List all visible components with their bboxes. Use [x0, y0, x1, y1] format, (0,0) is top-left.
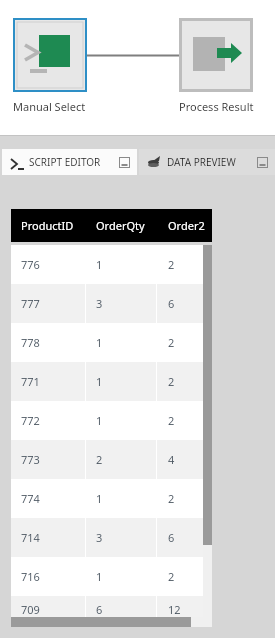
- staticText: SCRIPT EDITOR: [29, 155, 101, 169]
- button[interactable]: DATA PREVIEW: [139, 149, 275, 175]
- staticText: 2: [168, 257, 175, 272]
- staticText: DATA PREVIEW: [167, 155, 236, 169]
- button[interactable]: 777: [11, 284, 212, 323]
- staticText: 2: [168, 413, 175, 428]
- button[interactable]: 778: [11, 323, 212, 362]
- staticText: Order2: [168, 218, 205, 233]
- button[interactable]: 774: [11, 479, 212, 518]
- staticText: 6: [168, 530, 175, 545]
- staticText: 1: [96, 374, 103, 389]
- staticText: 3: [96, 296, 103, 311]
- staticText: 2: [168, 569, 175, 584]
- staticText: 1: [96, 569, 103, 584]
- staticText: OrderQty: [96, 218, 145, 233]
- button[interactable]: 771: [11, 362, 212, 401]
- staticText: 3: [96, 530, 103, 545]
- staticText: 778: [21, 335, 40, 350]
- staticText: 1: [96, 335, 103, 350]
- button[interactable]: 773: [11, 440, 212, 479]
- button[interactable]: 709: [11, 596, 212, 622]
- staticText: Manual Select: [13, 99, 86, 114]
- staticText: 2: [168, 335, 175, 350]
- button[interactable]: 716: [11, 557, 212, 596]
- button[interactable]: SCRIPT EDITOR: [2, 149, 137, 175]
- staticText: 1: [96, 257, 103, 272]
- button[interactable]: Horizontal scrollbar: [11, 617, 212, 627]
- button[interactable]: ProductID: [11, 218, 86, 233]
- button[interactable]: Vertical scrollbar: [203, 245, 212, 622]
- button[interactable]: 714: [11, 518, 212, 557]
- staticText: 709: [21, 602, 40, 617]
- staticText: 4: [168, 452, 175, 467]
- button[interactable]: 772: [11, 401, 212, 440]
- staticText: ProductID: [21, 218, 74, 233]
- staticText: 771: [21, 374, 40, 389]
- staticText: 2: [168, 491, 175, 506]
- button[interactable]: Manual Select node: [13, 18, 87, 92]
- staticText: 776: [21, 257, 40, 272]
- staticText: 1: [96, 413, 103, 428]
- staticText: 2: [96, 452, 103, 467]
- staticText: 773: [21, 452, 40, 467]
- staticText: 1: [96, 491, 103, 506]
- staticText: 772: [21, 413, 40, 428]
- staticText: 777: [21, 296, 40, 311]
- staticText: 774: [21, 491, 40, 506]
- button[interactable]: 776: [11, 245, 212, 284]
- staticText: 714: [21, 530, 40, 545]
- staticText: 716: [21, 569, 40, 584]
- staticText: 12: [168, 602, 181, 617]
- button[interactable]: Process Result node: [179, 18, 253, 92]
- staticText: 6: [168, 296, 175, 311]
- staticText: 2: [168, 374, 175, 389]
- button[interactable]: OrderQty: [86, 218, 157, 233]
- staticText: Process Result: [179, 99, 254, 114]
- button[interactable]: Order2: [157, 218, 212, 233]
- staticText: 6: [96, 602, 103, 617]
